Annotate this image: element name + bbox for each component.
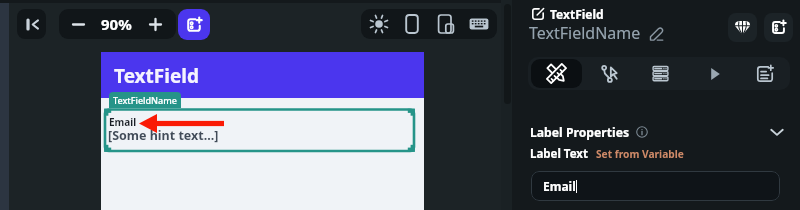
button[interactable]: Theme: [728, 13, 757, 42]
staticText: TextFieldName: [529, 22, 641, 44]
button[interactable]: Rename: [649, 26, 664, 41]
button[interactable]: Actions: [584, 57, 635, 90]
button[interactable]: Run: [689, 57, 740, 90]
staticText: TextFieldName: [113, 94, 177, 106]
button[interactable]: Collapse panel: [17, 9, 46, 39]
staticText: TextField: [550, 6, 604, 22]
button[interactable]: Docs: [739, 57, 790, 90]
button[interactable]: Set from Variable: [596, 147, 684, 161]
button[interactable]: Add component: [764, 13, 793, 42]
staticText: TextField: [114, 63, 199, 89]
button[interactable]: Backend: [635, 57, 686, 90]
button[interactable]: Label Properties: [512, 120, 800, 144]
button[interactable]: Email: [531, 171, 780, 201]
button[interactable]: Theme: [364, 9, 394, 39]
button[interactable]: Zoom out: [59, 9, 98, 39]
button[interactable]: Design: [531, 59, 582, 88]
button[interactable]: Zoom in: [134, 9, 176, 39]
staticText: 90%: [101, 14, 132, 34]
button[interactable]: Add widget: [178, 9, 210, 40]
staticText: Label Text: [530, 146, 588, 162]
staticText: Label Properties: [530, 124, 630, 141]
staticText: [Some hint text...]: [108, 127, 219, 144]
button[interactable]: Device frame: [397, 9, 427, 39]
staticText: Email: [543, 178, 576, 194]
button[interactable]: Keyboard: [464, 9, 494, 39]
staticText: Email: [109, 115, 137, 129]
button[interactable]: Layout: [431, 9, 461, 39]
button[interactable]: TextFieldName: [109, 92, 181, 108]
